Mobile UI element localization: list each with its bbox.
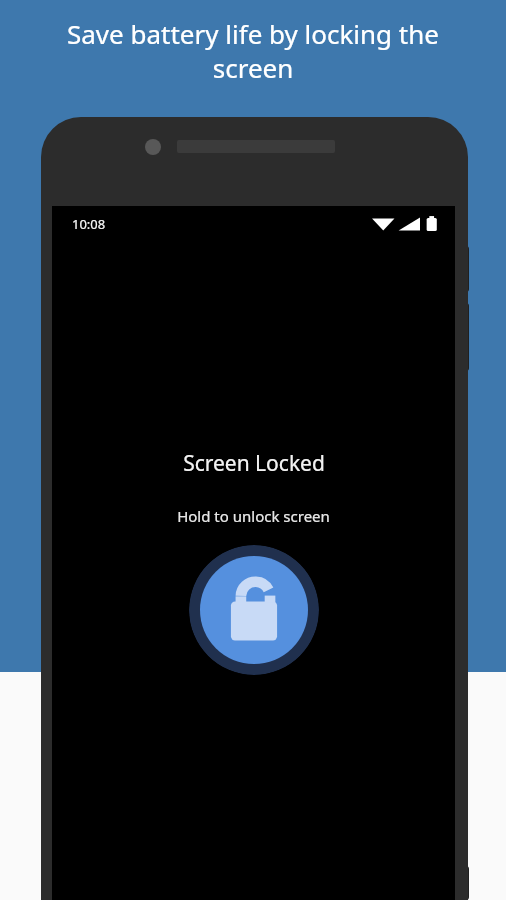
staticText: Screen Locked xyxy=(183,449,325,478)
button[interactable]: Hold to unlock screen xyxy=(189,545,319,675)
staticText: 10:08 xyxy=(72,215,106,233)
staticText: Hold to unlock screen xyxy=(177,506,330,526)
staticText: Save battery life by locking the screen xyxy=(26,16,480,85)
